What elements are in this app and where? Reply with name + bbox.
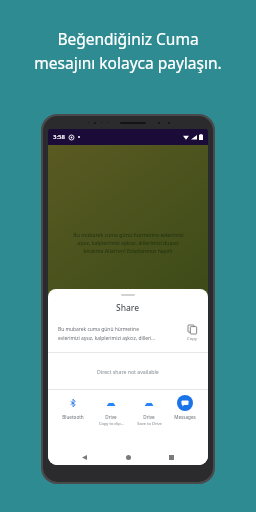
button[interactable]: Drive: [92, 390, 130, 426]
staticText: Drive: [105, 414, 117, 420]
button[interactable]: Copy: [184, 323, 200, 344]
button[interactable]: Back: [78, 451, 91, 464]
staticText: Copy: [187, 336, 197, 342]
staticText: Copy to clip…: [99, 421, 124, 426]
staticText: evlerimizi aşsız, kalplerimizi aşkcız, d…: [58, 335, 156, 342]
button[interactable]: Recents: [165, 451, 178, 464]
staticText: Drive: [143, 414, 155, 420]
staticText: Save to Drive: [137, 421, 162, 426]
staticText: Bu mubarek cuma günü hürmetine: [58, 326, 139, 333]
button[interactable]: Home: [122, 451, 135, 464]
staticText: Direct share not available: [97, 368, 159, 375]
staticText: aşsız, kalplerimizi aşksız, dillerimizi …: [77, 239, 179, 246]
staticText: mesajını kolayca paylaşın.: [34, 52, 222, 73]
staticText: Bu mübarek cuma günü hürmetine evlerimiz…: [73, 231, 184, 238]
staticText: Beğendiğiniz Cuma: [57, 28, 199, 49]
staticText: Messages: [174, 414, 196, 420]
staticText: Share: [116, 302, 140, 314]
button[interactable]: Messages: [168, 390, 202, 420]
staticText: 3:58: [53, 133, 65, 141]
button[interactable]: Bluetooth: [54, 390, 92, 420]
staticText: Bluetooth: [62, 414, 84, 420]
button[interactable]: Drive: [130, 390, 168, 426]
staticText: bırakma Allah'ım! Evlatlarımızı hayırlı: [83, 247, 173, 254]
